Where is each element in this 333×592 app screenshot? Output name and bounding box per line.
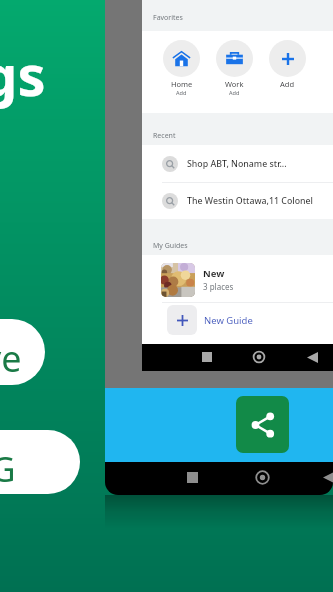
staticText: My Guides [153,241,188,251]
button[interactable]: Home [155,31,208,96]
staticText: Favorites [153,13,183,23]
staticText: Add [176,89,187,96]
other: Home [253,351,265,363]
button[interactable]: Work [208,31,261,96]
staticText: Home [171,79,193,89]
button[interactable]: Save [0,319,45,385]
button[interactable]: New Guide [142,303,333,344]
staticText: The Westin Ottawa,11 Colonel [187,195,313,207]
button[interactable]: Shop ABT, Noname str... [142,145,333,182]
button[interactable]: Add [261,31,314,89]
staticText: Add [280,79,295,89]
button[interactable]: LOG [0,430,80,494]
staticText: Shop ABT, Noname str... [187,158,287,170]
staticText: 3 places [203,281,234,292]
button[interactable]: New [142,255,333,302]
staticText: Settings [0,36,46,112]
staticText: Recent [153,131,176,141]
staticText: LOG [0,446,16,492]
other: Home [255,470,270,485]
staticText: New [203,267,225,280]
staticText: New Guide [204,314,253,327]
staticText: Add [229,89,240,96]
other: Back [307,352,318,363]
staticText: Save [0,334,22,383]
staticText: Work [225,79,244,89]
button[interactable]: The Westin Ottawa,11 Colonel [142,183,333,219]
button[interactable]: Share [236,396,289,453]
other: Back [323,471,333,484]
